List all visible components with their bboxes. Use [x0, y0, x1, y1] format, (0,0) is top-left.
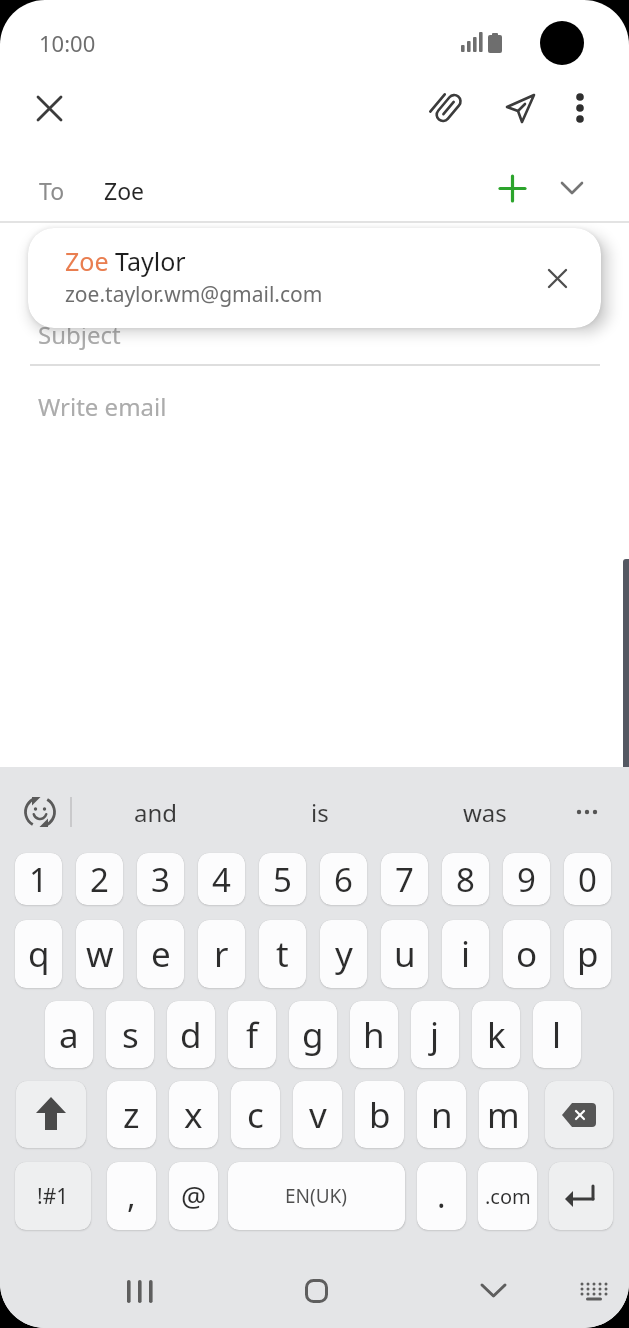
button[interactable] — [492, 168, 532, 208]
staticText: t — [276, 930, 289, 978]
button[interactable]: d — [167, 1001, 215, 1068]
button[interactable] — [545, 1081, 613, 1148]
button[interactable]: m — [479, 1081, 528, 1148]
button[interactable]: 0 — [564, 853, 611, 905]
button[interactable]: 9 — [503, 853, 550, 905]
button[interactable] — [497, 86, 541, 130]
button[interactable]: s — [106, 1001, 154, 1068]
button[interactable]: a — [45, 1001, 93, 1068]
button[interactable]: h — [350, 1001, 398, 1068]
button[interactable]: 7 — [381, 853, 428, 905]
button[interactable]: q — [15, 920, 62, 988]
button[interactable] — [568, 1265, 620, 1317]
button[interactable]: 4 — [198, 853, 245, 905]
staticText: 4 — [212, 857, 231, 902]
button[interactable]: was — [425, 790, 545, 834]
button[interactable]: e — [137, 920, 184, 988]
button[interactable]: l — [533, 1001, 581, 1068]
staticText: l — [552, 1011, 562, 1059]
staticText: s — [122, 1011, 139, 1059]
button[interactable]: b — [355, 1081, 404, 1148]
staticText: and — [134, 796, 178, 829]
button[interactable] — [114, 1265, 166, 1317]
button[interactable]: Zoe Taylor — [28, 228, 601, 328]
button[interactable] — [16, 1081, 86, 1148]
staticText: x — [184, 1091, 203, 1139]
staticText: z — [123, 1091, 140, 1139]
button[interactable] — [425, 86, 469, 130]
staticText: c — [247, 1091, 264, 1139]
button[interactable]: k — [472, 1001, 520, 1068]
button[interactable] — [549, 1162, 613, 1230]
button[interactable]: . — [417, 1162, 466, 1230]
button[interactable]: o — [503, 920, 550, 988]
button[interactable]: 1 — [15, 853, 62, 905]
staticText: 2 — [90, 857, 109, 902]
staticText: is — [311, 796, 329, 829]
button[interactable]: j — [411, 1001, 459, 1068]
staticText: q — [28, 930, 50, 978]
button[interactable]: f — [228, 1001, 276, 1068]
button[interactable] — [290, 1265, 342, 1317]
staticText: d — [180, 1011, 202, 1059]
button[interactable]: v — [293, 1081, 342, 1148]
button[interactable]: z — [107, 1081, 156, 1148]
button[interactable]: @ — [169, 1162, 218, 1230]
staticText: To — [39, 175, 65, 206]
staticText: f — [246, 1011, 259, 1059]
button[interactable]: w — [76, 920, 123, 988]
button[interactable]: 3 — [137, 853, 184, 905]
staticText: 9 — [517, 857, 536, 902]
button[interactable]: 8 — [442, 853, 489, 905]
button[interactable]: r — [198, 920, 245, 988]
button[interactable] — [467, 1265, 519, 1317]
button[interactable]: g — [289, 1001, 337, 1068]
staticText: 0 — [578, 857, 597, 902]
staticText: w — [86, 930, 114, 978]
staticText: Subject — [38, 318, 121, 351]
button[interactable]: t — [259, 920, 306, 988]
button[interactable]: !#1 — [15, 1162, 91, 1230]
button[interactable]: , — [107, 1162, 156, 1230]
staticText: r — [214, 930, 229, 978]
staticText: 8 — [456, 857, 475, 902]
staticText: @ — [181, 1177, 207, 1215]
button[interactable] — [531, 252, 583, 304]
button[interactable] — [27, 86, 71, 130]
button[interactable]: and — [96, 790, 216, 834]
staticText: i — [461, 930, 471, 978]
staticText: m — [487, 1091, 520, 1139]
button[interactable] — [552, 168, 592, 208]
button[interactable] — [14, 786, 66, 838]
button[interactable]: x — [169, 1081, 218, 1148]
staticText: , — [127, 1174, 136, 1218]
staticText: Zoe — [104, 175, 145, 206]
button[interactable] — [558, 86, 602, 130]
staticText: .com — [485, 1183, 531, 1210]
button[interactable]: EN(UK) — [228, 1162, 405, 1230]
staticText: 5 — [273, 857, 292, 902]
button[interactable]: is — [260, 790, 380, 834]
button[interactable]: c — [231, 1081, 280, 1148]
button[interactable]: 5 — [259, 853, 306, 905]
staticText: v — [309, 1091, 327, 1139]
button[interactable]: .com — [478, 1162, 537, 1230]
button[interactable]: y — [320, 920, 367, 988]
staticText: . — [437, 1174, 446, 1218]
staticText: j — [430, 1011, 440, 1059]
button[interactable]: u — [381, 920, 428, 988]
staticText: 1 — [29, 857, 48, 902]
staticText: Write email — [38, 390, 167, 423]
staticText: Zoe Taylor — [65, 244, 186, 278]
staticText: 6 — [334, 857, 353, 902]
button[interactable]: i — [442, 920, 489, 988]
staticText: zoe.taylor.wm@gmail.com — [65, 280, 323, 309]
staticText: 3 — [151, 857, 170, 902]
button[interactable]: 2 — [76, 853, 123, 905]
staticText: y — [335, 930, 353, 978]
button[interactable]: p — [564, 920, 611, 988]
button[interactable]: 6 — [320, 853, 367, 905]
staticText: o — [516, 930, 538, 978]
button[interactable]: n — [417, 1081, 466, 1148]
staticText: b — [369, 1091, 391, 1139]
